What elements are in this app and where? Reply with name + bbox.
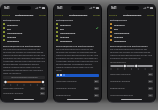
staticText: Softwarekonfig. bbox=[69, 13, 88, 16]
staticText: Die Softwarekonfiguration bestimmt das V… bbox=[110, 48, 153, 60]
button[interactable]: Minimale Leistung bbox=[56, 86, 99, 91]
button[interactable]: Maximale Leistung bbox=[56, 79, 99, 84]
button[interactable]: Standard bbox=[56, 22, 99, 26]
staticText: Leistungsbereich einstellen bbox=[11, 76, 38, 79]
staticText: Standard bbox=[7, 23, 18, 26]
button[interactable]: Manuell bbox=[110, 34, 153, 38]
button[interactable]: Hochleistung bbox=[110, 30, 153, 34]
button[interactable]: Individuell bbox=[110, 38, 153, 42]
button[interactable]: Manuell bbox=[3, 34, 45, 38]
staticText: Standard bbox=[114, 23, 125, 26]
button[interactable]: Fertig bbox=[93, 13, 100, 16]
staticText: 20 bbox=[95, 87, 98, 90]
button[interactable]: Maximale Leistung bbox=[3, 86, 45, 91]
button[interactable]: Abschaltverzögerung bbox=[110, 93, 153, 98]
staticText: Zurück bbox=[55, 13, 64, 16]
staticText: Softwarekonfig. bbox=[123, 13, 142, 16]
staticText: Minimale Leistung bbox=[110, 80, 130, 83]
staticText: Eco bbox=[7, 27, 12, 30]
button[interactable]: Regelintervall bbox=[110, 86, 153, 91]
staticText: 80 bbox=[149, 73, 152, 76]
staticText: 15 bbox=[149, 94, 152, 97]
staticText: 60 bbox=[149, 87, 152, 90]
staticText: Individuell bbox=[7, 39, 19, 42]
staticText: Minimale Leistung bbox=[56, 87, 76, 90]
staticText: Beschreibung und Einstellungen bbox=[110, 44, 148, 47]
staticText: Betriebsmodus bbox=[3, 19, 21, 22]
staticText: Softwarekonfig. bbox=[15, 13, 34, 16]
button[interactable]: Individuell bbox=[56, 38, 99, 42]
button[interactable]: Hochleistung bbox=[3, 30, 45, 34]
staticText: Individuell bbox=[114, 39, 126, 42]
button[interactable]: Hochleistung bbox=[56, 30, 99, 34]
staticText: Fertig bbox=[93, 13, 100, 16]
staticText: Fertig bbox=[39, 13, 46, 16]
staticText: Fertig bbox=[147, 13, 154, 16]
button[interactable]: Fertig bbox=[147, 13, 154, 16]
staticText: 9:41 bbox=[57, 6, 63, 10]
button[interactable]: Zurück bbox=[109, 13, 118, 16]
staticText: Maximale Leistung bbox=[56, 80, 77, 83]
staticText: Beschreibung und Einstellungen bbox=[3, 44, 41, 47]
staticText: Leistungsbereich bbox=[110, 61, 127, 64]
staticText: Die Softwarekonfiguration bestimmt das V… bbox=[3, 48, 45, 75]
staticText: Die Softwarekonfiguration bestimmt das V… bbox=[56, 48, 99, 72]
button[interactable]: Zurück bbox=[2, 13, 11, 16]
staticText: Regelintervall bbox=[110, 87, 125, 90]
button[interactable]: Standard bbox=[3, 22, 45, 26]
staticText: Individuell bbox=[60, 39, 72, 42]
staticText: Maximale Leistung bbox=[3, 87, 24, 90]
button[interactable]: Minimale Leistung bbox=[110, 79, 153, 84]
button[interactable]: Manuell bbox=[56, 34, 99, 38]
button[interactable]: Fertig bbox=[39, 13, 46, 16]
staticText: Manuell bbox=[60, 35, 70, 38]
button[interactable]: Individuell bbox=[3, 38, 45, 42]
staticText: Hochleistung bbox=[114, 31, 130, 34]
staticText: Beschreibung und Einstellungen bbox=[56, 44, 94, 47]
staticText: Hochleistung bbox=[7, 31, 23, 34]
staticText: 9:41 bbox=[111, 6, 117, 10]
button[interactable]: Eco bbox=[110, 26, 153, 30]
staticText: 80 bbox=[41, 87, 44, 90]
staticText: Maximale Leistung bbox=[110, 73, 131, 76]
staticText: Regelintervall bbox=[56, 94, 71, 97]
button[interactable]: Minimale Leistung bbox=[3, 91, 45, 96]
staticText: Betriebsmodus bbox=[110, 19, 128, 22]
button[interactable]: Regelintervall bbox=[56, 93, 99, 98]
staticText: 60 bbox=[95, 94, 98, 97]
staticText: Zurück bbox=[109, 13, 118, 16]
staticText: Manuell bbox=[114, 35, 124, 38]
staticText: Minimale Leistung bbox=[3, 92, 23, 95]
staticText: 80 bbox=[95, 80, 98, 83]
staticText: 20 bbox=[149, 80, 152, 83]
staticText: Abschaltverzögerung bbox=[110, 94, 134, 97]
staticText: Betriebsmodus bbox=[56, 19, 74, 22]
button[interactable]: Eco bbox=[56, 26, 99, 30]
staticText: Eco bbox=[60, 27, 65, 30]
staticText: Zurück bbox=[2, 13, 11, 16]
staticText: Standard bbox=[60, 23, 71, 26]
staticText: 20 bbox=[41, 92, 44, 95]
staticText: 9:41 bbox=[4, 6, 10, 10]
button[interactable]: Zurück bbox=[55, 13, 64, 16]
button[interactable]: Eco bbox=[3, 26, 45, 30]
staticText: Manuell bbox=[7, 35, 17, 38]
button[interactable]: Standard bbox=[110, 22, 153, 26]
staticText: Hochleistung bbox=[60, 31, 76, 34]
button[interactable]: Maximale Leistung bbox=[110, 72, 153, 77]
staticText: Eco bbox=[114, 27, 119, 30]
